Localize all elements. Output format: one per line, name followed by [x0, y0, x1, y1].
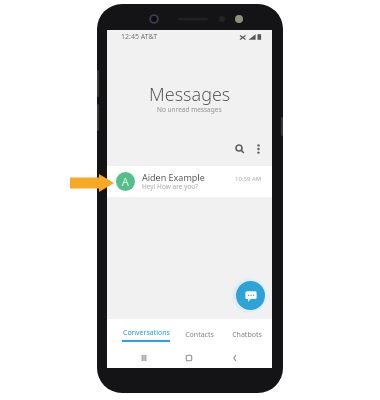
- button[interactable]: Back: [212, 347, 258, 368]
- staticText: Contacts: [185, 330, 214, 340]
- staticText: 10:59 AM: [235, 175, 262, 183]
- button[interactable]: A: [107, 166, 272, 197]
- button[interactable]: Recents: [121, 347, 166, 368]
- button[interactable]: New conversation: [236, 281, 265, 310]
- staticText: Aiden Example: [142, 171, 205, 183]
- button[interactable]: More options: [249, 140, 267, 158]
- button[interactable]: Contacts: [185, 323, 214, 347]
- staticText: 12:45 AT&T: [121, 32, 158, 42]
- staticText: Conversations: [123, 328, 170, 338]
- staticText: No unread messages: [157, 105, 222, 114]
- button[interactable]: Home: [166, 347, 212, 368]
- button[interactable]: Chatbots: [232, 323, 262, 347]
- staticText: A: [122, 174, 129, 189]
- staticText: Chatbots: [232, 330, 262, 340]
- staticText: Messages: [149, 82, 231, 107]
- staticText: Hey! How are you?: [142, 182, 199, 191]
- button[interactable]: Conversations: [122, 323, 170, 347]
- button[interactable]: Search: [231, 140, 249, 158]
